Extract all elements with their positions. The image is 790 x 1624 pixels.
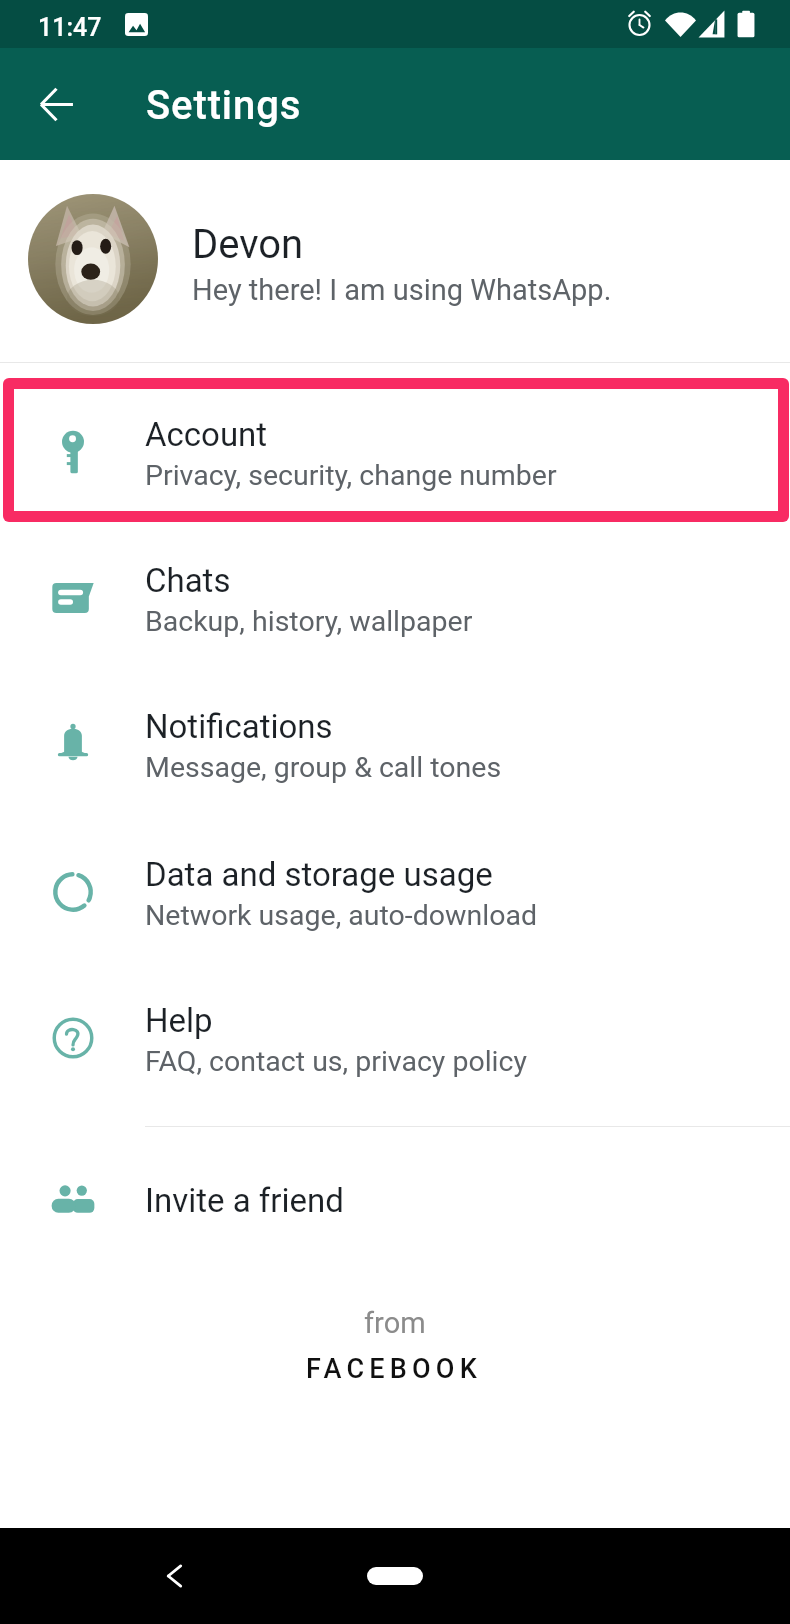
button[interactable]: Back <box>25 73 87 135</box>
staticText: FAQ, contact us, privacy policy <box>145 1045 527 1078</box>
staticText: Devon <box>192 221 304 268</box>
staticText: Hey there! I am using WhatsApp. <box>192 273 612 307</box>
button[interactable]: Devon <box>0 160 790 362</box>
button[interactable]: Invite a friend <box>0 1127 790 1273</box>
staticText: FACEBOOK <box>306 1353 482 1385</box>
staticText: Notifications <box>145 707 333 746</box>
staticText: 11:47 <box>38 13 102 42</box>
button[interactable]: Back <box>146 1548 202 1604</box>
staticText: Network usage, auto-download <box>145 899 537 932</box>
button[interactable]: Data and storage usage <box>0 815 790 961</box>
staticText: Invite a friend <box>145 1181 344 1220</box>
staticText: from <box>364 1306 426 1340</box>
button[interactable]: Account <box>14 389 778 511</box>
staticText: Message, group & call tones <box>145 751 502 784</box>
staticText: Chats <box>145 561 231 600</box>
staticText: Backup, history, wallpaper <box>145 605 473 638</box>
staticText: Account <box>145 415 268 454</box>
staticText: Settings <box>146 82 302 129</box>
button[interactable]: Chats <box>0 522 790 668</box>
staticText: Privacy, security, change number <box>145 459 557 492</box>
button[interactable]: Home <box>367 1567 423 1585</box>
button[interactable]: Notifications <box>0 668 790 814</box>
button[interactable]: Help <box>0 961 790 1107</box>
staticText: Help <box>145 1001 213 1040</box>
staticText: Data and storage usage <box>145 855 493 894</box>
